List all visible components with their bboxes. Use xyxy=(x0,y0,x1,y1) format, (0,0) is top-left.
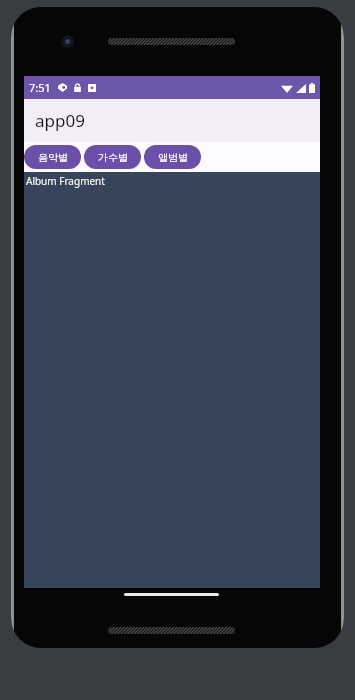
staticText: 앨범별 xyxy=(158,151,188,164)
staticText: 음악별 xyxy=(38,151,68,164)
button[interactable]: 가수별 xyxy=(84,145,141,169)
button[interactable]: 음악별 xyxy=(24,145,81,169)
staticText: app09 xyxy=(35,109,85,132)
staticText: 가수별 xyxy=(98,151,128,164)
staticText: Album Fragment xyxy=(26,174,105,188)
staticText: 7:51 xyxy=(29,80,51,95)
button[interactable]: 앨범별 xyxy=(144,145,201,169)
